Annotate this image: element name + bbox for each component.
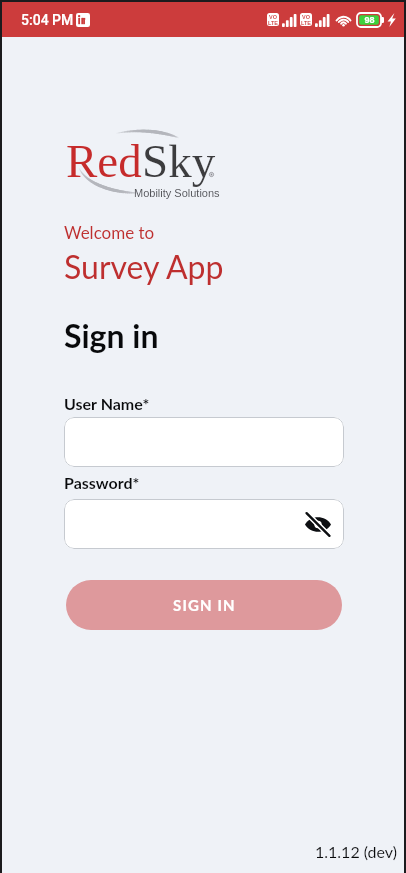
staticText: Survey App — [64, 247, 224, 285]
staticText: LTE — [301, 20, 311, 26]
staticText: VO — [302, 14, 310, 20]
staticText: User Name* — [64, 394, 150, 413]
staticText: Mobility Solutions — [134, 187, 220, 199]
staticText: Welcome to — [64, 222, 155, 242]
staticText: 98 — [364, 15, 375, 25]
staticText: 1.1.12 (dev) — [315, 842, 397, 861]
staticText: Sign in — [64, 316, 159, 354]
button[interactable] — [64, 417, 344, 467]
staticText: Red — [66, 135, 142, 187]
button[interactable]: SIGN IN — [66, 580, 342, 630]
button[interactable]: Show password — [64, 499, 344, 549]
staticText: Sky — [142, 135, 216, 187]
button[interactable]: Show password — [302, 508, 334, 540]
staticText: Password* — [64, 473, 140, 492]
other: LinkedIn notification — [76, 13, 90, 27]
staticText: SIGN IN — [173, 596, 236, 614]
staticText: 5:04 PM — [21, 12, 74, 28]
staticText: LTE — [268, 20, 278, 26]
staticText: VO — [269, 14, 277, 20]
